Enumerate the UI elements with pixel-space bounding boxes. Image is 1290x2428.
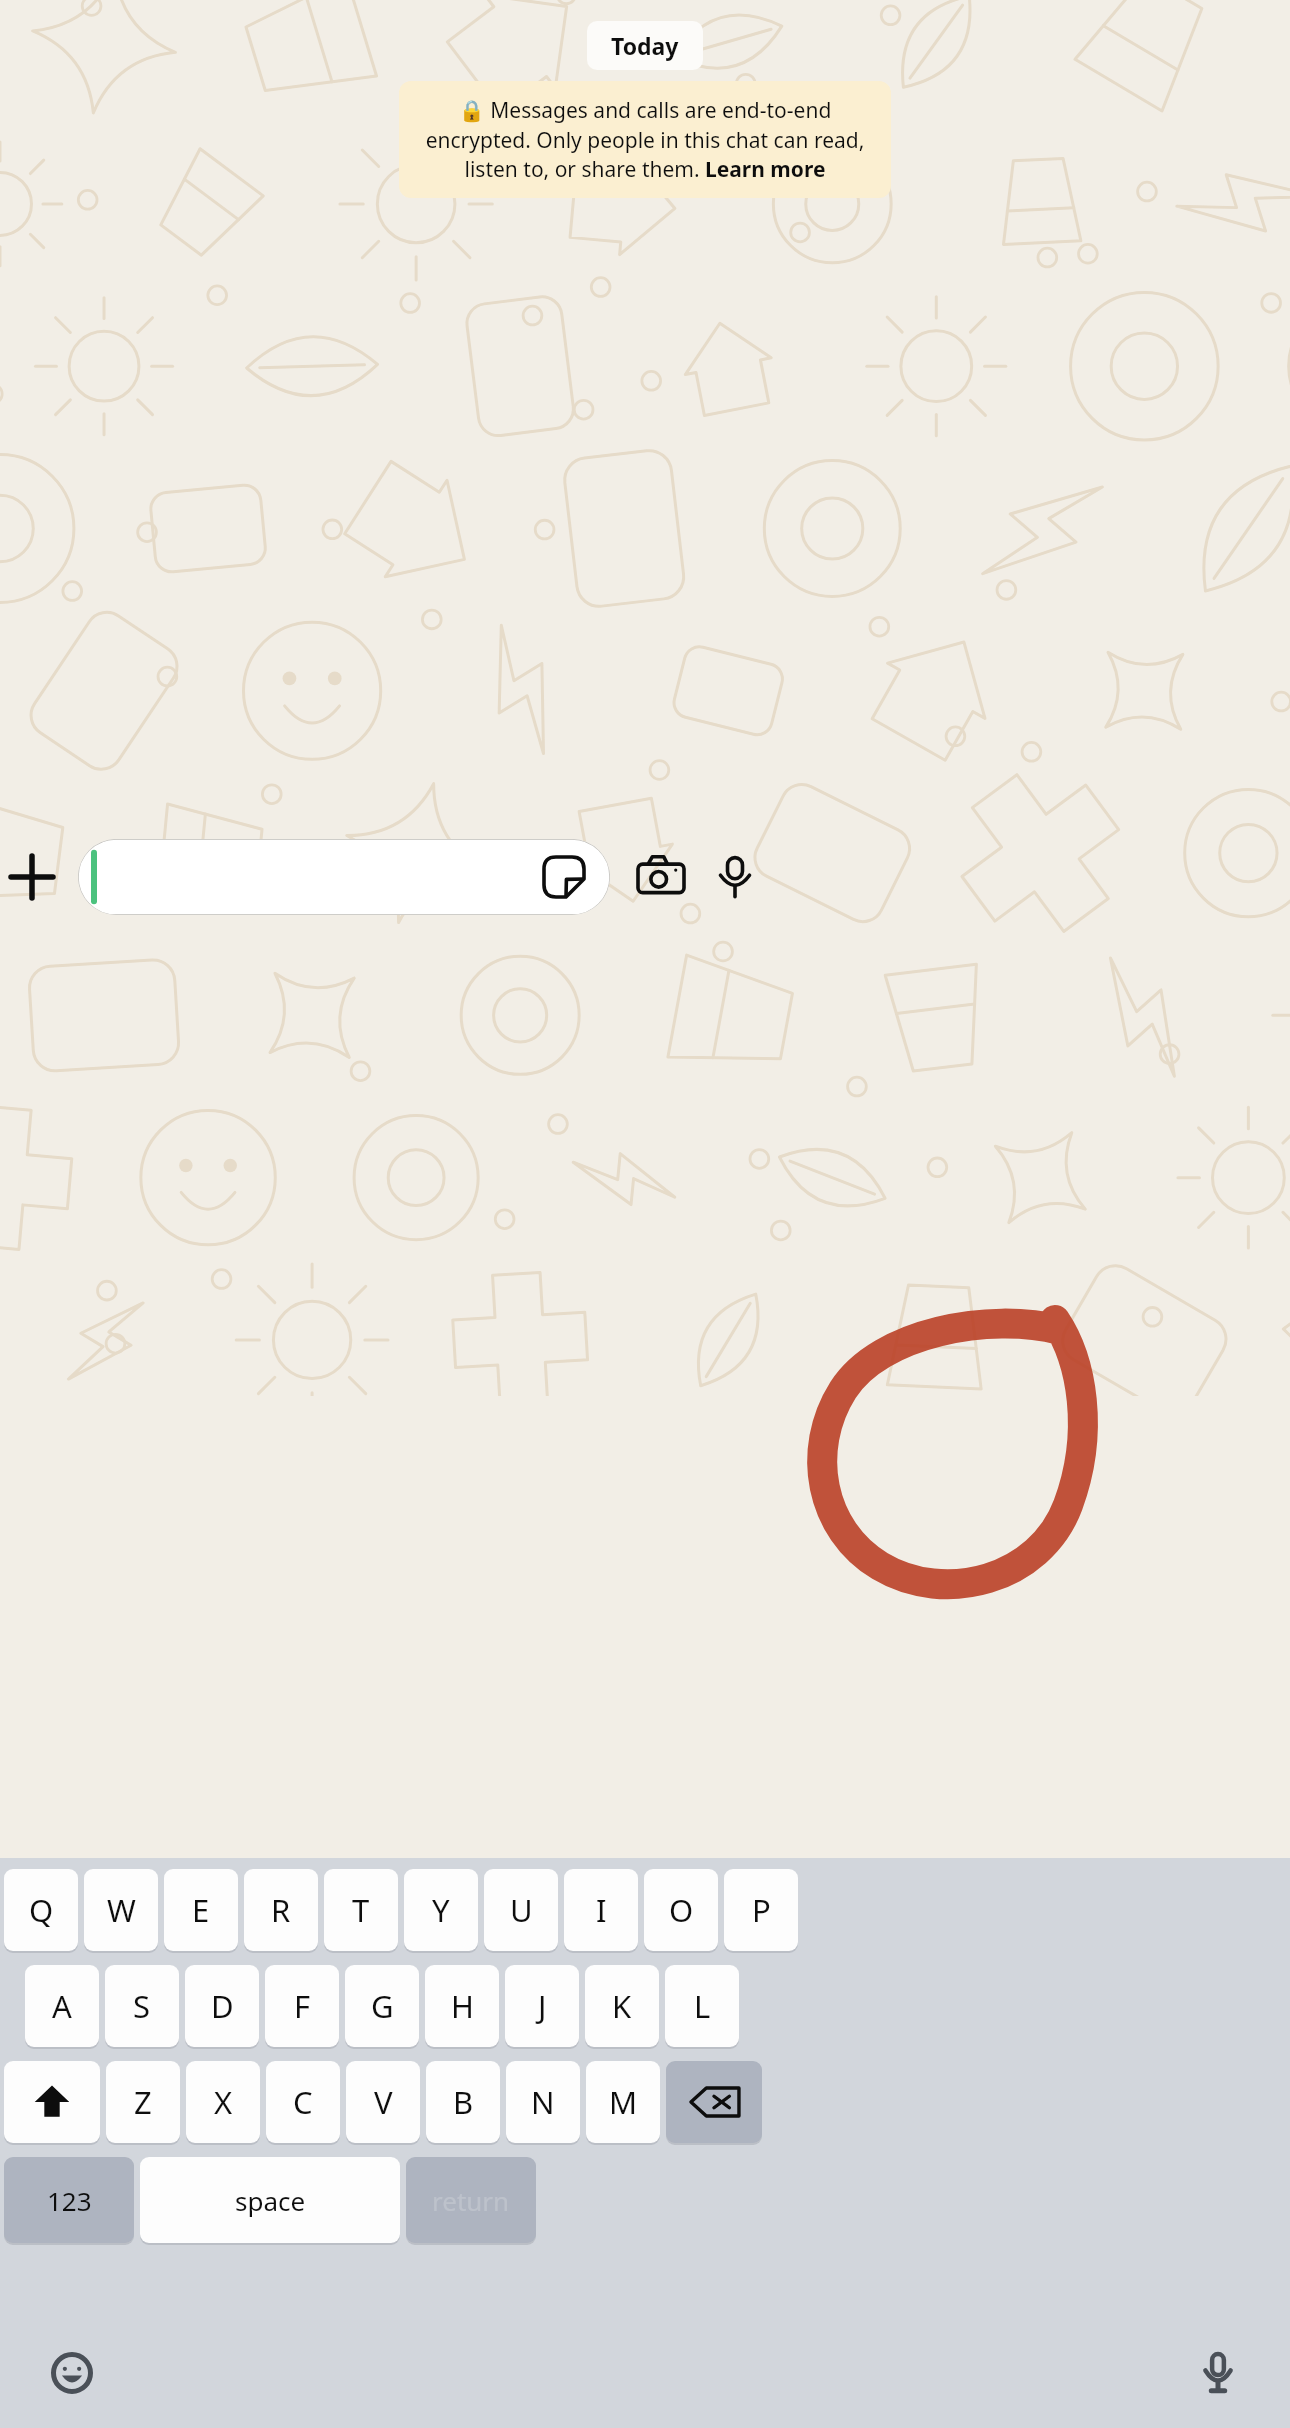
button[interactable]: J <box>505 1965 579 2047</box>
staticText: A <box>52 1985 72 2027</box>
staticText: Q <box>29 1889 54 1931</box>
staticText: G <box>371 1985 394 2027</box>
staticText: space <box>235 2183 306 2218</box>
button[interactable]: Backspace <box>666 2061 762 2143</box>
button[interactable]: T <box>324 1869 398 1951</box>
button[interactable]: Camera <box>630 846 692 908</box>
staticText: K <box>612 1985 632 2027</box>
button[interactable]: Y <box>404 1869 478 1951</box>
staticText: M <box>609 2081 638 2123</box>
staticText: F <box>294 1985 311 2027</box>
button[interactable]: E <box>164 1869 238 1951</box>
button[interactable]: Emoji <box>42 2343 102 2403</box>
button[interactable]: X <box>186 2061 260 2143</box>
staticText: J <box>538 1985 547 2027</box>
staticText: 🔒 Messages and calls are end-to-end encr… <box>415 96 875 183</box>
button[interactable]: B <box>426 2061 500 2143</box>
button[interactable]: 123 <box>4 2157 134 2243</box>
button[interactable]: 🔒 Messages and calls are end-to-end encr… <box>399 81 891 198</box>
staticText: V <box>374 2081 393 2123</box>
staticText: Today <box>611 30 679 61</box>
button[interactable]: W <box>84 1869 158 1951</box>
button[interactable]: Stickers <box>78 839 610 915</box>
staticText: X <box>214 2081 233 2123</box>
staticText: P <box>752 1889 771 1931</box>
staticText: C <box>293 2081 313 2123</box>
button[interactable]: U <box>484 1869 558 1951</box>
staticText: I <box>596 1889 607 1931</box>
button[interactable]: Z <box>106 2061 180 2143</box>
staticText: D <box>211 1985 234 2027</box>
button[interactable]: Voice message <box>704 846 766 908</box>
staticText: O <box>669 1889 694 1931</box>
button[interactable]: C <box>266 2061 340 2143</box>
staticText: 123 <box>47 2183 92 2218</box>
button[interactable]: I <box>564 1869 638 1951</box>
button[interactable]: V <box>346 2061 420 2143</box>
button[interactable]: F <box>265 1965 339 2047</box>
button[interactable]: O <box>644 1869 718 1951</box>
button[interactable]: Today <box>587 21 703 70</box>
button[interactable]: S <box>105 1965 179 2047</box>
button[interactable]: return <box>406 2157 536 2243</box>
staticText: Y <box>432 1889 450 1931</box>
staticText: B <box>453 2081 474 2123</box>
staticText: H <box>451 1985 474 2027</box>
staticText: Z <box>134 2081 152 2123</box>
staticText: S <box>133 1985 151 2027</box>
staticText: R <box>271 1889 291 1931</box>
button[interactable]: Dictation <box>1188 2343 1248 2403</box>
button[interactable]: D <box>185 1965 259 2047</box>
button[interactable]: P <box>724 1869 798 1951</box>
button[interactable]: K <box>585 1965 659 2047</box>
button[interactable]: Stickers <box>540 853 588 901</box>
staticText: return <box>432 2183 510 2218</box>
button[interactable]: Q <box>4 1869 78 1951</box>
button[interactable]: A <box>25 1965 99 2047</box>
staticText: U <box>510 1889 533 1931</box>
staticText: T <box>352 1889 370 1931</box>
button[interactable]: Shift <box>4 2061 100 2143</box>
button[interactable]: H <box>425 1965 499 2047</box>
button[interactable]: M <box>586 2061 660 2143</box>
button[interactable]: N <box>506 2061 580 2143</box>
button[interactable]: G <box>345 1965 419 2047</box>
staticText: W <box>107 1889 136 1931</box>
staticText: E <box>192 1889 210 1931</box>
button[interactable]: L <box>665 1965 739 2047</box>
staticText: N <box>531 2081 555 2123</box>
staticText: L <box>694 1985 711 2027</box>
button[interactable]: Attach <box>0 845 64 909</box>
button[interactable]: R <box>244 1869 318 1951</box>
button[interactable]: space <box>140 2157 400 2243</box>
